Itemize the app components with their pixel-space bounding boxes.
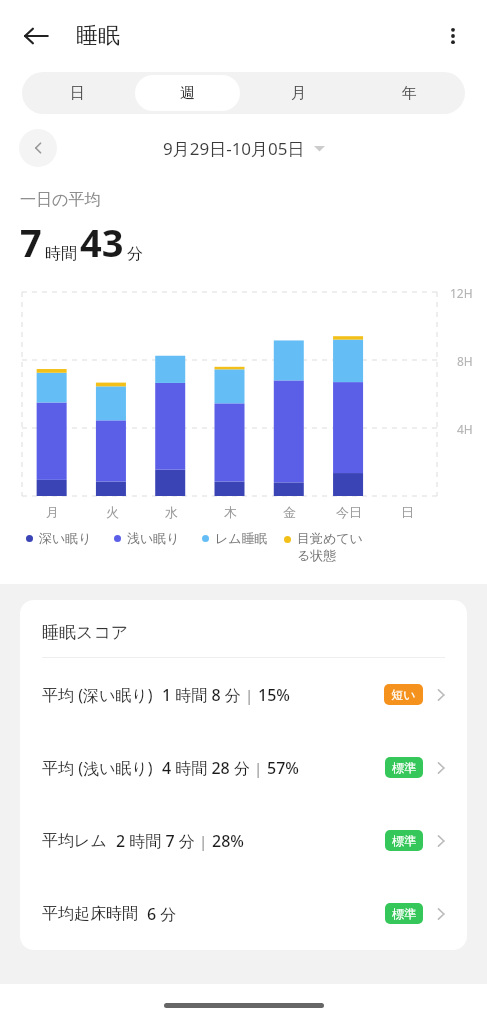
staticText: 1 時間 8 分 bbox=[162, 684, 241, 706]
button[interactable]: 平均レム bbox=[20, 804, 467, 877]
staticText: 平均 (深い眠り) bbox=[42, 684, 153, 706]
staticText: 月 bbox=[291, 84, 306, 103]
staticText: 木 bbox=[224, 504, 237, 520]
staticText: 短い bbox=[391, 687, 416, 702]
staticText: 15% bbox=[258, 684, 290, 706]
button[interactable]: 平均起床時間 bbox=[20, 877, 467, 950]
staticText: 目覚めている状態 bbox=[297, 530, 369, 564]
button[interactable]: 9月29日-10月05日 bbox=[157, 133, 331, 164]
staticText: 4H bbox=[457, 421, 473, 437]
staticText: 9月29日-10月05日 bbox=[163, 137, 305, 160]
staticText: 57% bbox=[267, 757, 299, 779]
button[interactable]: 週 bbox=[135, 75, 240, 111]
staticText: 年 bbox=[402, 84, 417, 103]
button[interactable]: Previous week bbox=[19, 129, 57, 167]
staticText: | bbox=[241, 685, 258, 705]
staticText: | bbox=[195, 831, 212, 851]
staticText: 月 bbox=[46, 504, 59, 520]
button[interactable]: 月 bbox=[246, 75, 351, 111]
button[interactable]: Back bbox=[12, 12, 60, 60]
staticText: 28% bbox=[212, 830, 244, 852]
staticText: レム睡眠 bbox=[215, 530, 268, 546]
staticText: 7 bbox=[20, 216, 42, 268]
staticText: 8H bbox=[457, 353, 473, 369]
button[interactable]: 日 bbox=[25, 75, 129, 111]
staticText: 2 時間 7 分 bbox=[116, 830, 195, 852]
staticText: 一日の平均 bbox=[20, 190, 101, 210]
button[interactable]: 年 bbox=[357, 75, 462, 111]
staticText: | bbox=[250, 758, 267, 778]
staticText: 睡眠スコア bbox=[42, 622, 129, 643]
staticText: 時間 bbox=[45, 244, 77, 264]
staticText: 4 時間 28 分 bbox=[162, 757, 250, 779]
staticText: 睡眠 bbox=[76, 22, 120, 50]
staticText: 平均 (浅い眠り) bbox=[42, 757, 153, 779]
staticText: 週 bbox=[180, 84, 195, 103]
staticText: 分 bbox=[127, 244, 143, 264]
staticText: 日 bbox=[70, 84, 85, 103]
staticText: 6 分 bbox=[147, 903, 177, 925]
staticText: 43 bbox=[80, 216, 124, 268]
staticText: 平均レム bbox=[42, 831, 107, 851]
staticText: 標準 bbox=[392, 760, 416, 775]
staticText: 浅い眠り bbox=[127, 530, 180, 546]
button[interactable]: More options bbox=[429, 12, 477, 60]
staticText: 12H bbox=[450, 285, 473, 301]
staticText: 金 bbox=[283, 504, 296, 520]
staticText: 火 bbox=[106, 504, 119, 520]
staticText: 標準 bbox=[392, 906, 416, 921]
staticText: 水 bbox=[165, 504, 178, 520]
staticText: 平均起床時間 bbox=[42, 904, 138, 924]
button[interactable]: 平均 (浅い眠り) bbox=[20, 731, 467, 804]
staticText: 日 bbox=[401, 504, 414, 520]
staticText: 標準 bbox=[392, 833, 416, 848]
button[interactable]: 平均 (深い眠り) bbox=[20, 658, 467, 731]
staticText: 深い眠り bbox=[39, 530, 92, 546]
staticText: 今日 bbox=[336, 504, 362, 520]
